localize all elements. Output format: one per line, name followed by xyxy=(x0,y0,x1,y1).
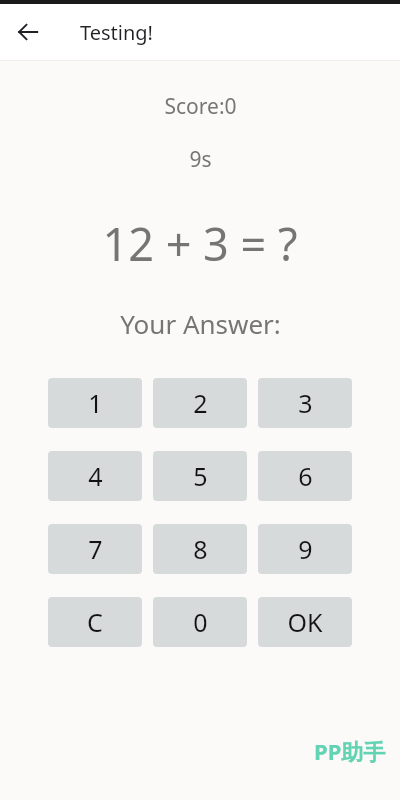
staticText: 0 xyxy=(193,605,208,639)
staticText: 7 xyxy=(88,532,103,566)
button[interactable]: 6 xyxy=(258,451,352,501)
button[interactable]: 9 xyxy=(258,524,352,574)
staticText: 5 xyxy=(193,459,208,493)
button[interactable]: Back xyxy=(8,12,48,52)
staticText: 9 xyxy=(298,532,313,566)
staticText: Testing! xyxy=(80,19,153,46)
staticText: 1 xyxy=(88,386,103,420)
button[interactable]: 5 xyxy=(153,451,247,501)
staticText: C xyxy=(87,605,103,639)
button[interactable]: 0 xyxy=(153,597,247,647)
staticText: 4 xyxy=(88,459,103,493)
button[interactable]: OK xyxy=(258,597,352,647)
button[interactable]: C xyxy=(48,597,142,647)
staticText: PP助手 xyxy=(314,736,386,766)
button[interactable]: 4 xyxy=(48,451,142,501)
staticText: 8 xyxy=(193,532,208,566)
staticText: 12 + 3 = ? xyxy=(102,213,298,274)
staticText: 2 xyxy=(193,386,208,420)
button[interactable]: 3 xyxy=(258,378,352,428)
staticText: OK xyxy=(287,605,323,639)
staticText: Score:0 xyxy=(164,92,237,121)
button[interactable]: 7 xyxy=(48,524,142,574)
button[interactable]: 8 xyxy=(153,524,247,574)
staticText: 3 xyxy=(298,386,313,420)
button[interactable]: 1 xyxy=(48,378,142,428)
staticText: 9s xyxy=(189,145,212,174)
staticText: 6 xyxy=(298,459,313,493)
staticText: Your Answer: xyxy=(120,306,281,341)
button[interactable]: 2 xyxy=(153,378,247,428)
